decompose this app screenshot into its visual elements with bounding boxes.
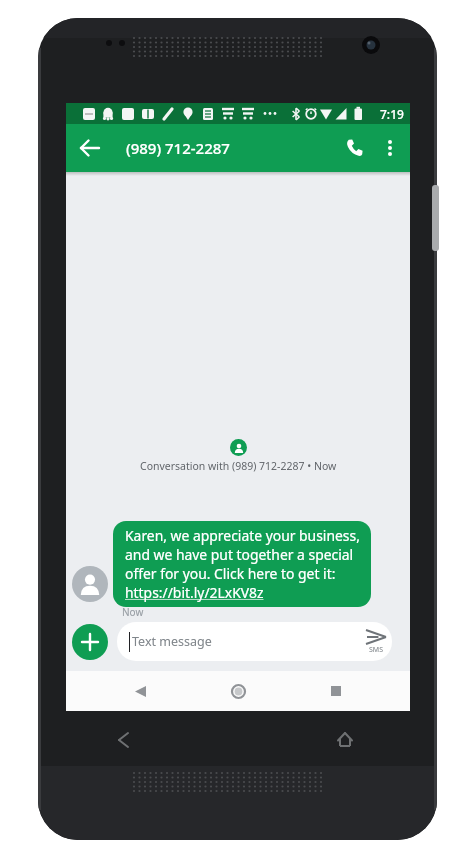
button[interactable] <box>66 124 114 172</box>
button[interactable] <box>312 671 360 711</box>
staticText: Text message <box>132 633 364 650</box>
button[interactable] <box>214 671 262 711</box>
staticText: offer for you. Click here to get it: <box>125 564 336 583</box>
staticText: SMS <box>369 645 384 655</box>
staticText: Conversation with (989) 712-2287 • Now <box>140 459 337 473</box>
button[interactable]: Text message <box>117 622 392 661</box>
staticText: Karen, we appreciate your business, <box>125 526 359 545</box>
staticText: and we have put together a special <box>125 545 354 564</box>
staticText: 7:19 <box>380 106 404 122</box>
staticText: Now <box>122 605 144 619</box>
button[interactable] <box>370 124 410 172</box>
button[interactable]: Karen, we appreciate your business, <box>113 521 371 607</box>
staticText: https://bit.ly/2LxKV8z <box>125 583 264 602</box>
button[interactable] <box>116 671 164 711</box>
button[interactable] <box>72 624 108 660</box>
button[interactable] <box>326 124 370 172</box>
staticText: (989) 712-2287 <box>126 138 326 158</box>
